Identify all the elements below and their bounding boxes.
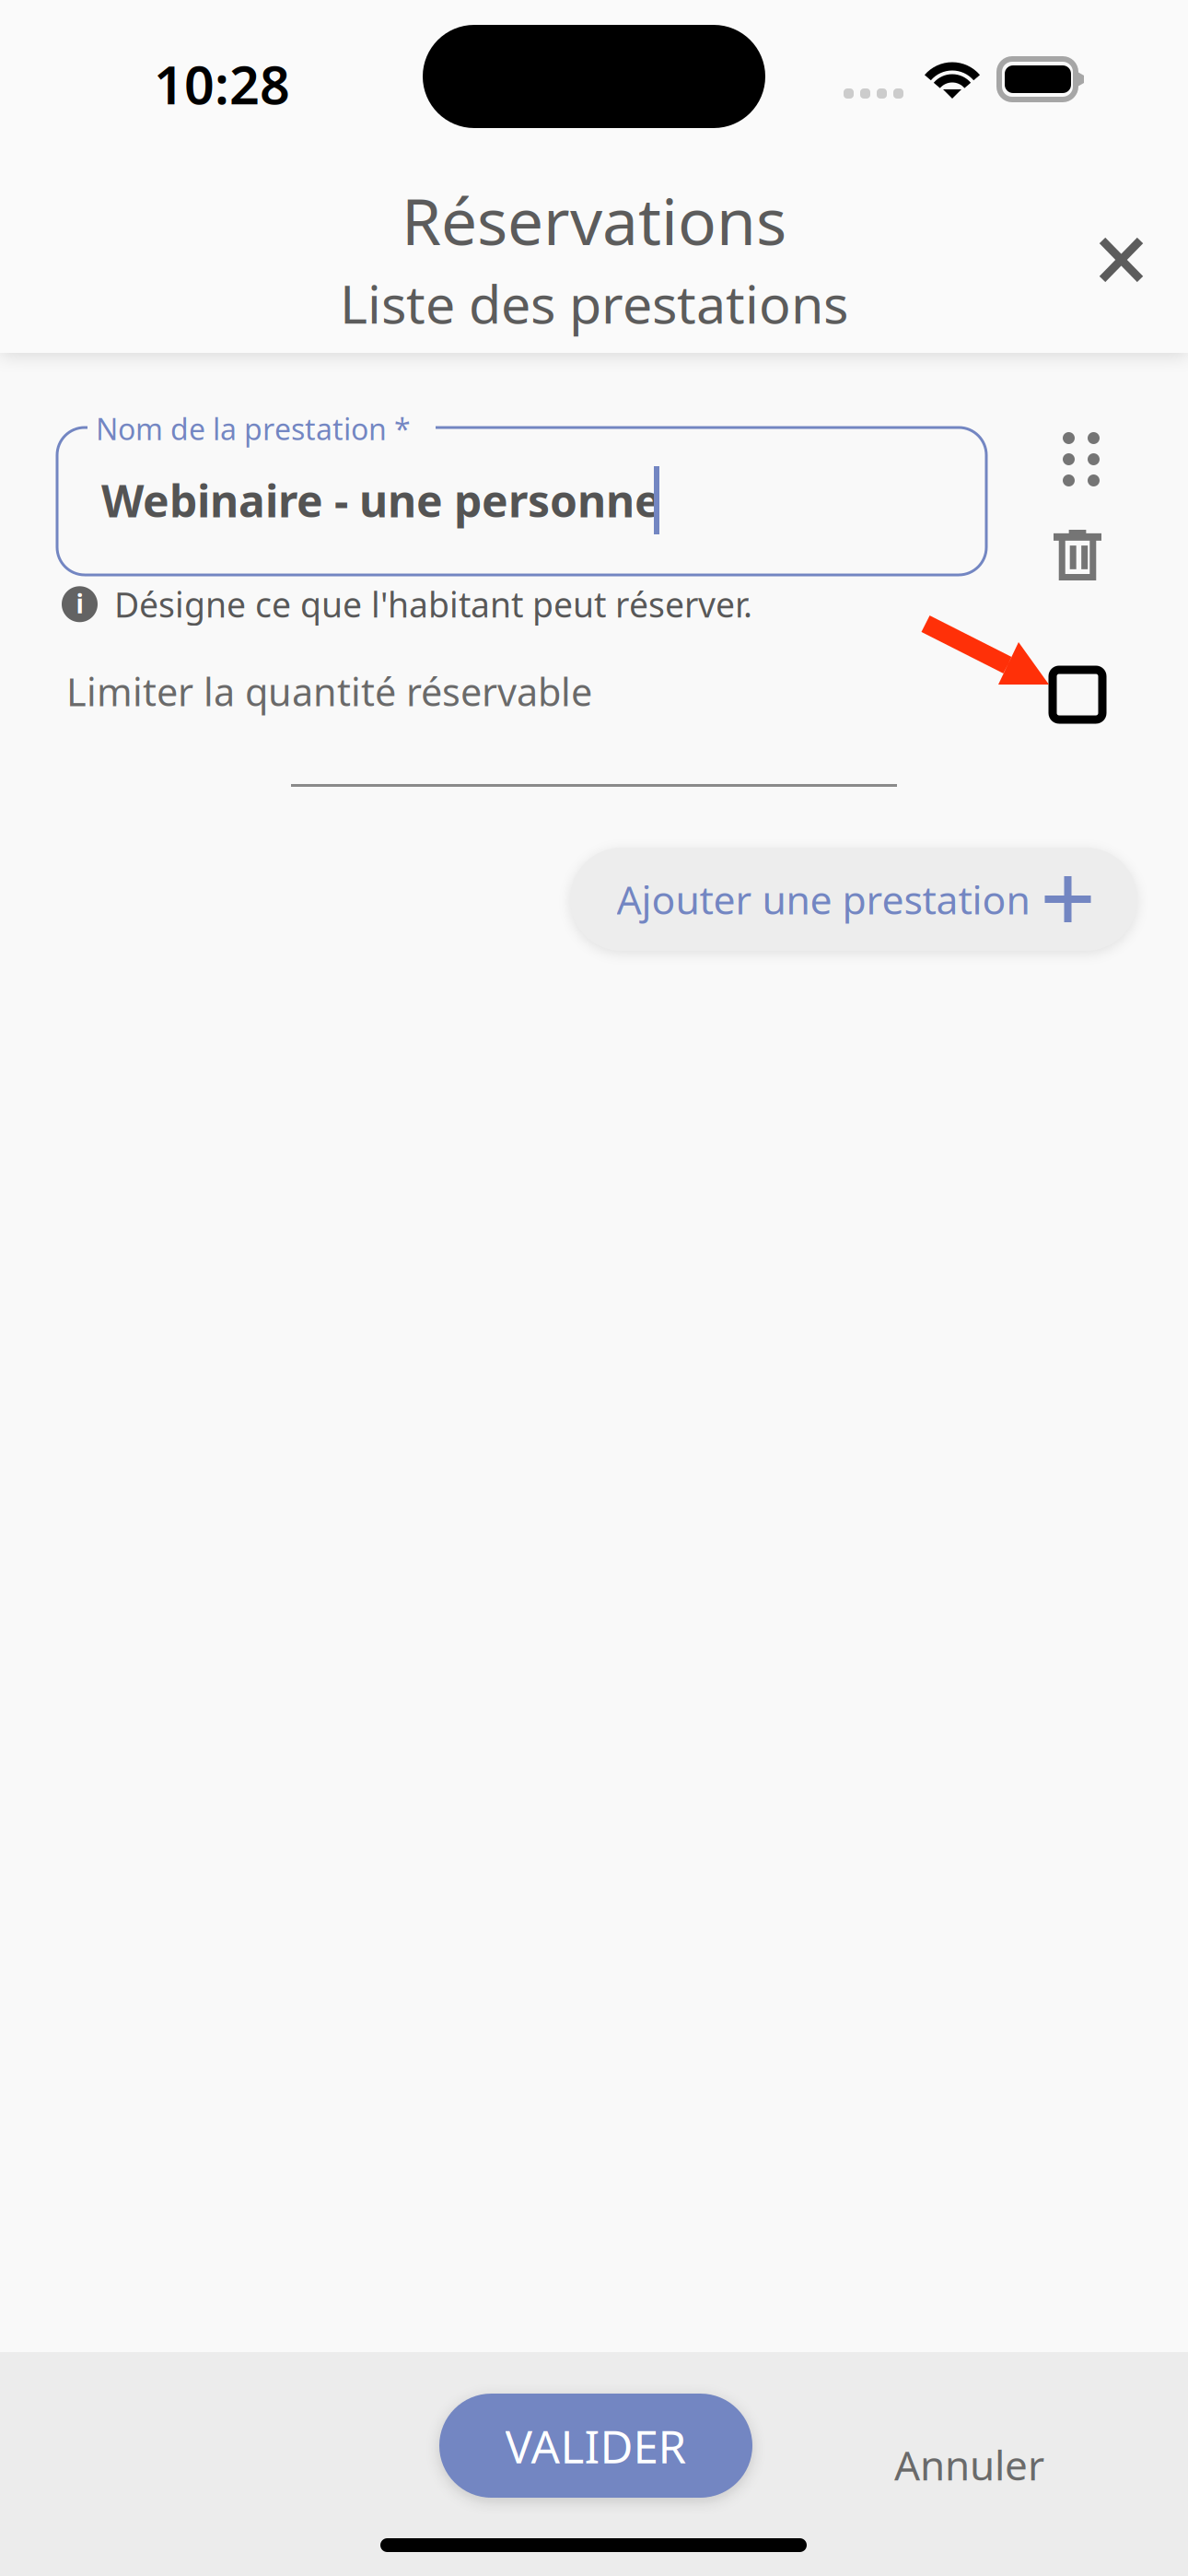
staticText: Liste des prestations (340, 268, 848, 338)
staticText: 10:28 (154, 49, 290, 119)
button[interactable]: Réordonner la prestation (1039, 408, 1124, 510)
staticText: i (76, 586, 83, 620)
staticText: Nom de la prestation * (96, 409, 411, 448)
button[interactable]: Supprimer la prestation (1030, 506, 1125, 604)
staticText: Limiter la quantité réservable (66, 666, 592, 717)
button[interactable]: Ajouter une prestation (570, 848, 1137, 951)
button[interactable]: Annuler (878, 2421, 1061, 2508)
staticText: Annuler (894, 2438, 1044, 2492)
staticText: Désigne ce que l'habitant peut réserver. (114, 581, 752, 627)
button[interactable]: Fermer (1075, 213, 1168, 307)
staticText: VALIDER (505, 2415, 687, 2476)
staticText: Webinaire - une personne (101, 471, 661, 529)
button[interactable]: Limiter la quantité réservable (1031, 648, 1124, 742)
staticText: Réservations (402, 178, 786, 263)
button[interactable]: VALIDER (439, 2394, 752, 2498)
staticText: Ajouter une prestation (617, 873, 1030, 925)
